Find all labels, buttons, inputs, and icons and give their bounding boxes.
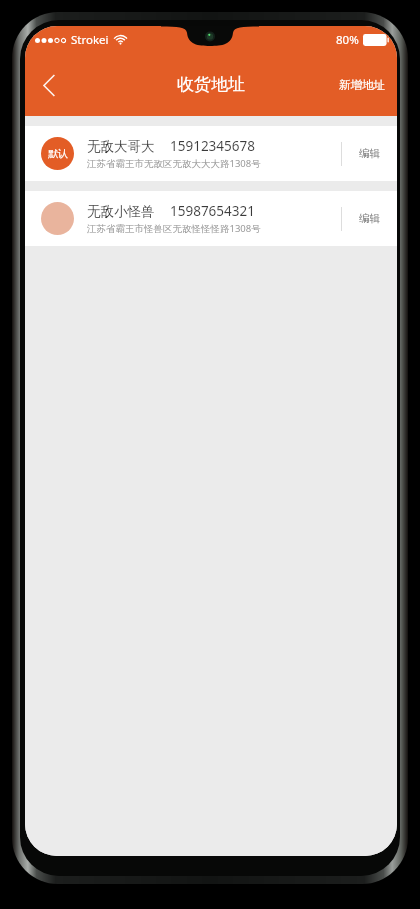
- staticText: 默认: [48, 147, 68, 160]
- staticText: Strokei: [71, 32, 109, 48]
- button[interactable]: 新增地址: [327, 66, 397, 104]
- staticText: 80%: [336, 32, 359, 48]
- staticText: 江苏省霸王市怪兽区无敌怪怪怪路1308号: [87, 222, 261, 235]
- staticText: 新增地址: [339, 78, 385, 92]
- staticText: 无敌大哥大: [87, 138, 155, 155]
- staticText: 编辑: [359, 212, 380, 225]
- button[interactable]: Back: [25, 60, 73, 110]
- button[interactable]: 编辑: [342, 126, 397, 181]
- staticText: 无敌小怪兽: [87, 203, 155, 220]
- button[interactable]: 编辑: [342, 191, 397, 246]
- button[interactable]: 无敌小怪兽: [25, 191, 397, 246]
- staticText: 15987654321: [170, 202, 255, 220]
- staticText: 江苏省霸王市无敌区无敌大大大路1308号: [87, 157, 261, 170]
- staticText: 收货地址: [177, 74, 245, 95]
- staticText: 15912345678: [170, 137, 255, 155]
- button[interactable]: 默认: [25, 126, 397, 181]
- staticText: 编辑: [359, 147, 380, 160]
